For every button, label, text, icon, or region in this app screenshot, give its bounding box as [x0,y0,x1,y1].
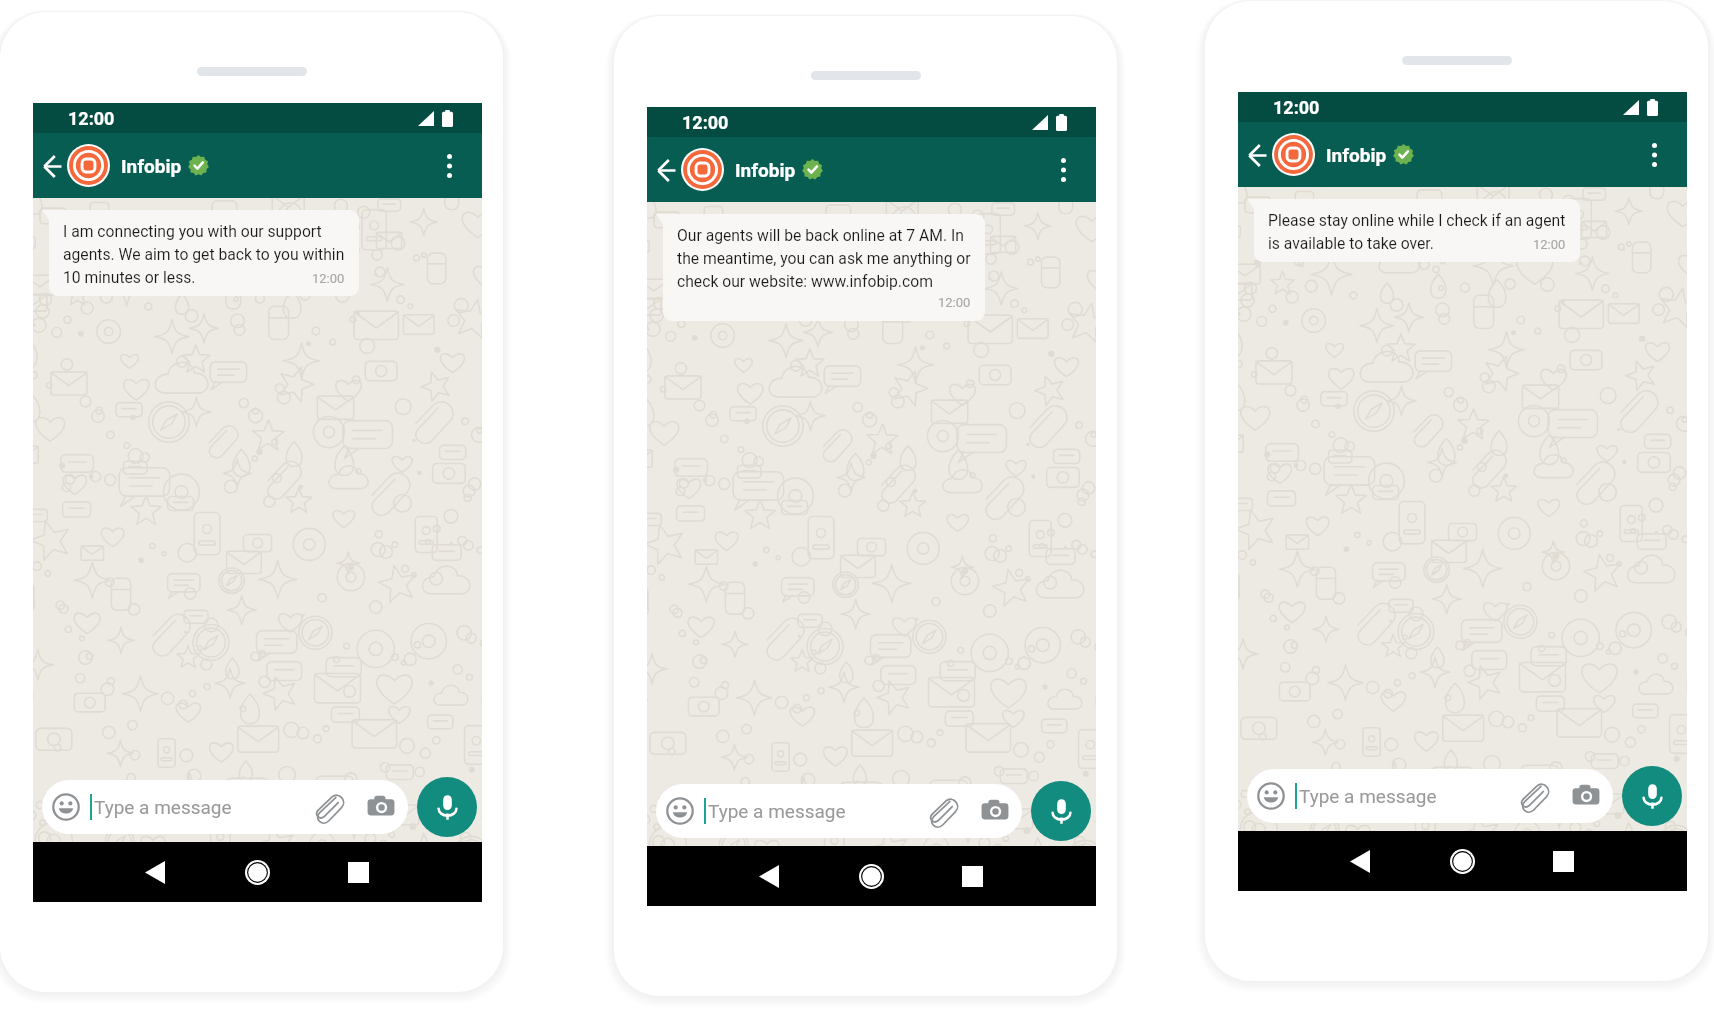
button[interactable]: Infobip [1272,133,1414,176]
button[interactable]: Recent apps [335,849,381,895]
button[interactable]: More options [429,146,469,186]
staticText: Our agents will be back online at 7 AM. … [677,226,964,244]
button[interactable]: Recent apps [1540,838,1586,884]
staticText: 10 minutes or less. [63,268,196,286]
button[interactable]: Emoji [1247,769,1613,823]
button[interactable]: Emoji [42,780,408,834]
button[interactable]: Back [1243,141,1271,169]
staticText: Please stay online while I check if an a… [1268,211,1566,229]
button[interactable]: Record voice message [1622,766,1682,826]
button[interactable]: Emoji [52,793,80,821]
staticText: Type a message [94,796,232,818]
staticText: Infobip [121,155,182,177]
button[interactable]: Back [652,156,680,184]
button[interactable]: Back [1337,838,1383,884]
staticText: 12:00 [1533,237,1566,252]
staticText: the meantime, you can ask me anything or [677,249,971,267]
staticText: 12:00 [938,295,971,310]
button[interactable]: Record voice message [417,777,477,837]
button[interactable]: Record voice message [1031,781,1091,841]
button[interactable]: Infobip [67,144,209,187]
button[interactable]: Back [38,152,66,180]
staticText: 12:00 [682,112,729,133]
button[interactable]: Back [746,853,792,899]
staticText: Type a message [1299,785,1437,807]
staticText: 12:00 [1273,97,1320,118]
button[interactable]: Attach file [313,793,341,821]
staticText: agents. We aim to get back to you within [63,245,345,263]
button[interactable]: Camera [1572,782,1600,810]
button[interactable]: More options [1043,150,1083,190]
button[interactable]: Camera [981,797,1009,825]
button[interactable]: Recent apps [949,853,995,899]
button[interactable]: Home [234,849,280,895]
staticText: check our website: www.infobip.com [677,272,933,290]
button[interactable]: Infobip [681,148,823,191]
button[interactable]: Home [848,853,894,899]
button[interactable]: Emoji [1257,782,1285,810]
staticText: Infobip [1326,144,1387,166]
button[interactable]: More options [1634,135,1674,175]
button[interactable]: Camera [367,793,395,821]
staticText: I am connecting you with our support [63,222,322,240]
button[interactable]: Back [132,849,178,895]
button[interactable]: Emoji [656,784,1022,838]
staticText: 12:00 [68,108,115,129]
staticText: Type a message [708,800,846,822]
staticText: 12:00 [312,271,345,286]
button[interactable]: Home [1439,838,1485,884]
button[interactable]: Emoji [666,797,694,825]
button[interactable]: Attach file [1518,782,1546,810]
button[interactable]: Attach file [927,797,955,825]
staticText: is available to take over. [1268,234,1434,252]
staticText: Infobip [735,159,796,181]
